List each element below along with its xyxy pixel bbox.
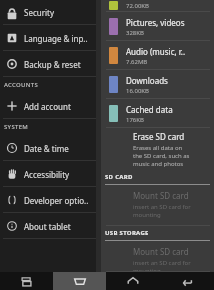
staticText: Cached data: [126, 104, 173, 115]
staticText: Mount SD card: [133, 246, 189, 257]
button[interactable]: Screenshot: [53, 272, 106, 290]
button[interactable]: Erase SD card: [101, 128, 214, 170]
button[interactable]: Downloads: [101, 70, 214, 99]
staticText: 7.62MB: [126, 58, 148, 66]
staticText: Developer optio..: [24, 195, 89, 206]
staticText: Security: [24, 7, 55, 18]
staticText: Language & inp..: [24, 33, 88, 44]
staticText: About tablet: [24, 221, 71, 232]
staticText: insert an SD card for: [133, 203, 191, 211]
button[interactable]: Cached data: [101, 99, 214, 128]
button[interactable]: Audio (music, r..: [101, 41, 214, 70]
staticText: the SD card, such as: [133, 152, 190, 160]
staticText: 176KB: [126, 116, 144, 124]
staticText: Audio (music, r..: [126, 46, 186, 57]
staticText: Erase SD card: [133, 131, 185, 142]
button[interactable]: Add account: [0, 93, 96, 119]
button[interactable]: Date & time: [0, 135, 96, 161]
staticText: Pictures, videos: [126, 17, 185, 28]
button[interactable]: Back: [160, 272, 214, 290]
button[interactable]: Home: [106, 272, 160, 290]
staticText: Add account: [24, 101, 71, 112]
button[interactable]: Security: [0, 0, 96, 25]
staticText: SD CARD: [105, 173, 133, 181]
staticText: 16.00KB: [126, 87, 149, 95]
button[interactable]: Developer optio..: [0, 187, 96, 213]
button[interactable]: Language & inp..: [0, 25, 96, 51]
button[interactable]: Backup & reset: [0, 51, 96, 77]
staticText: insert an SD card for: [133, 259, 191, 267]
button[interactable]: Recent apps: [0, 272, 53, 290]
staticText: music and photos: [133, 160, 184, 168]
staticText: 72.00KB: [126, 2, 149, 10]
staticText: Downloads: [126, 75, 168, 86]
staticText: mounting: [133, 211, 161, 219]
staticText: USB STORAGE: [105, 229, 149, 237]
staticText: ACCOUNTS: [4, 81, 39, 89]
button[interactable]: Pictures, videos: [101, 12, 214, 41]
staticText: Mount SD card: [133, 190, 189, 201]
button[interactable]: Accessibility: [0, 161, 96, 187]
staticText: 328KB: [126, 29, 144, 37]
staticText: SYSTEM: [4, 123, 29, 131]
staticText: mounting: [133, 267, 161, 272]
staticText: Erases all data on: [133, 144, 183, 152]
staticText: Backup & reset: [24, 59, 81, 70]
staticText: Date & time: [24, 143, 69, 154]
staticText: Accessibility: [24, 169, 70, 180]
button[interactable]: About tablet: [0, 213, 96, 239]
